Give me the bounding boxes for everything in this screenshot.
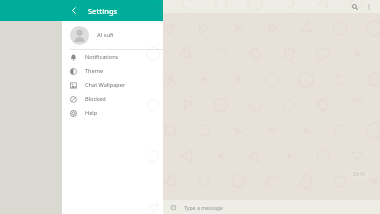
staticText: 23:49: [353, 171, 365, 177]
button[interactable]: Chat Wallpaper: [62, 78, 163, 92]
staticText: Help: [85, 109, 98, 117]
staticText: Type a message: [184, 204, 223, 211]
staticText: Chat Wallpaper: [85, 81, 126, 89]
button[interactable]: Theme: [62, 64, 163, 78]
button[interactable]: Notifications: [62, 50, 163, 64]
button[interactable]: Help: [62, 106, 163, 120]
staticText: Blocked: [85, 95, 106, 103]
staticText: Theme: [85, 67, 104, 75]
button[interactable]: Blocked: [62, 92, 163, 106]
button[interactable]: Menu: [364, 2, 374, 12]
button[interactable]: Search: [350, 2, 360, 12]
button[interactable]: Emoji: [169, 203, 178, 212]
button[interactable]: Back: [68, 4, 81, 17]
staticText: Al sufi: [97, 31, 114, 39]
button[interactable]: Al sufi: [62, 21, 163, 49]
staticText: Notifications: [85, 53, 119, 61]
staticText: Settings: [88, 6, 118, 16]
